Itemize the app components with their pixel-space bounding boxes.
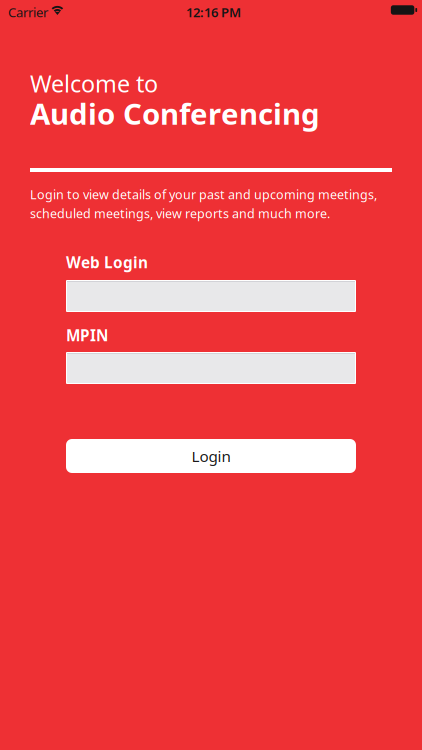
button[interactable]: MPIN <box>66 352 356 384</box>
staticText: Login <box>191 446 230 466</box>
staticText: Web Login <box>66 252 148 272</box>
staticText: Carrier <box>8 4 48 21</box>
staticText: 12:16 PM <box>186 4 241 21</box>
staticText: Welcome to <box>30 68 158 99</box>
staticText: Login to view details of your past and u… <box>30 186 377 222</box>
staticText: Audio Conferencing <box>30 94 320 133</box>
staticText: MPIN <box>66 325 108 345</box>
button[interactable]: Web Login <box>66 280 356 312</box>
button[interactable]: Login <box>66 439 356 473</box>
